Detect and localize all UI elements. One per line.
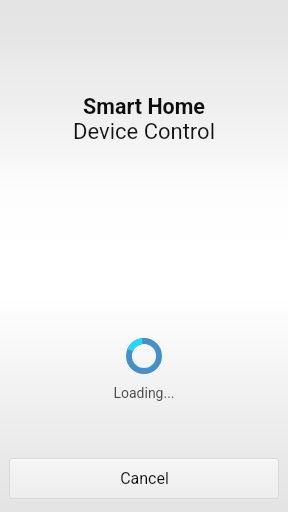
staticText: Smart Home [83, 94, 205, 119]
staticText: Loading... [113, 385, 175, 401]
other: Loading progress [126, 338, 162, 374]
button[interactable]: Cancel [10, 459, 278, 498]
staticText: Device Control [73, 119, 215, 145]
staticText: Cancel [120, 469, 169, 488]
